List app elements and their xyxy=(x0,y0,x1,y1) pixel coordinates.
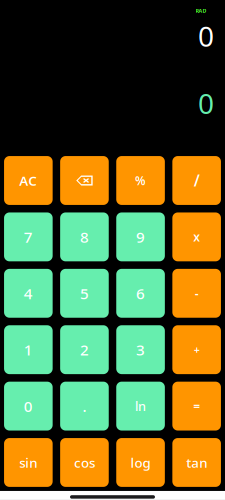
staticText: 0 xyxy=(198,84,214,122)
button[interactable]: . xyxy=(60,382,109,430)
button[interactable]: % xyxy=(116,156,165,205)
staticText: / xyxy=(194,170,200,191)
staticText: 9 xyxy=(136,226,145,247)
button[interactable]: 2 xyxy=(60,325,109,374)
staticText: 5 xyxy=(80,283,89,304)
button[interactable]: + xyxy=(172,325,221,374)
button[interactable]: / xyxy=(172,156,221,205)
button[interactable]: = xyxy=(172,382,221,430)
staticText: 6 xyxy=(136,283,145,304)
button[interactable]: 3 xyxy=(116,325,165,374)
staticText: = xyxy=(193,398,200,414)
button[interactable]: sin xyxy=(4,438,53,487)
staticText: 0 xyxy=(198,17,214,54)
button[interactable]: - xyxy=(172,269,221,318)
button[interactable]: 0 xyxy=(4,382,53,430)
staticText: x xyxy=(193,229,200,245)
button[interactable]: 8 xyxy=(60,212,109,261)
staticText: 1 xyxy=(24,339,33,360)
button[interactable]: Delete xyxy=(60,156,109,205)
staticText: ln xyxy=(135,397,146,415)
staticText: 8 xyxy=(80,226,89,247)
staticText: . xyxy=(82,396,86,416)
staticText: 4 xyxy=(24,283,33,304)
staticText: - xyxy=(195,285,199,301)
button[interactable]: 5 xyxy=(60,269,109,318)
staticText: + xyxy=(194,342,200,357)
button[interactable]: 6 xyxy=(116,269,165,318)
staticText: % xyxy=(135,172,146,189)
staticText: 2 xyxy=(80,339,89,360)
button[interactable]: 9 xyxy=(116,212,165,261)
staticText: tan xyxy=(186,453,207,472)
button[interactable]: cos xyxy=(60,438,109,487)
staticText: 0 xyxy=(24,396,33,416)
button[interactable]: ln xyxy=(116,382,165,430)
button[interactable]: 4 xyxy=(4,269,53,318)
button[interactable]: tan xyxy=(172,438,221,487)
staticText: AC xyxy=(19,171,37,190)
button[interactable]: 1 xyxy=(4,325,53,374)
staticText: log xyxy=(131,453,151,472)
button[interactable]: AC xyxy=(4,156,53,205)
staticText: sin xyxy=(19,453,37,472)
staticText: 3 xyxy=(136,339,145,360)
button[interactable]: 7 xyxy=(4,212,53,261)
button[interactable]: x xyxy=(172,212,221,261)
staticText: RAD xyxy=(195,7,206,14)
staticText: 7 xyxy=(24,226,33,247)
button[interactable]: log xyxy=(116,438,165,487)
staticText: cos xyxy=(74,453,95,472)
